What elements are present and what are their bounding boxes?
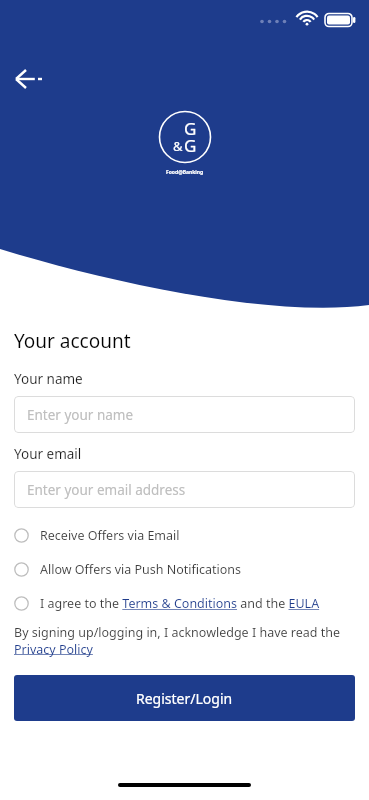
button[interactable]: Back xyxy=(10,62,50,96)
staticText: Food@Banking xyxy=(166,169,204,176)
staticText: Your name xyxy=(14,370,83,388)
staticText: & xyxy=(173,137,183,155)
staticText: Receive Offers via Email xyxy=(40,527,180,544)
staticText: Your email xyxy=(14,445,82,463)
button[interactable]: Enter your name xyxy=(14,396,355,433)
staticText: By signing up/logging in, I acknowledge … xyxy=(14,624,340,657)
button[interactable]: Enter your email address xyxy=(14,471,355,508)
button[interactable]: Register/Login xyxy=(14,675,355,721)
staticText: Your account xyxy=(14,328,131,354)
button[interactable]: Receive Offers via Email xyxy=(14,522,355,548)
staticText: Enter your email address xyxy=(27,481,186,499)
staticText: I agree to the Terms & Conditions and th… xyxy=(40,595,320,612)
button[interactable]: I agree to the Terms & Conditions and th… xyxy=(14,590,355,616)
button[interactable]: Allow Offers via Push Notifications xyxy=(14,556,355,582)
staticText: Register/Login xyxy=(136,689,233,708)
staticText: Enter your name xyxy=(27,406,134,424)
staticText: G xyxy=(184,134,197,157)
staticText: G xyxy=(184,117,197,140)
staticText: Allow Offers via Push Notifications xyxy=(40,561,242,578)
